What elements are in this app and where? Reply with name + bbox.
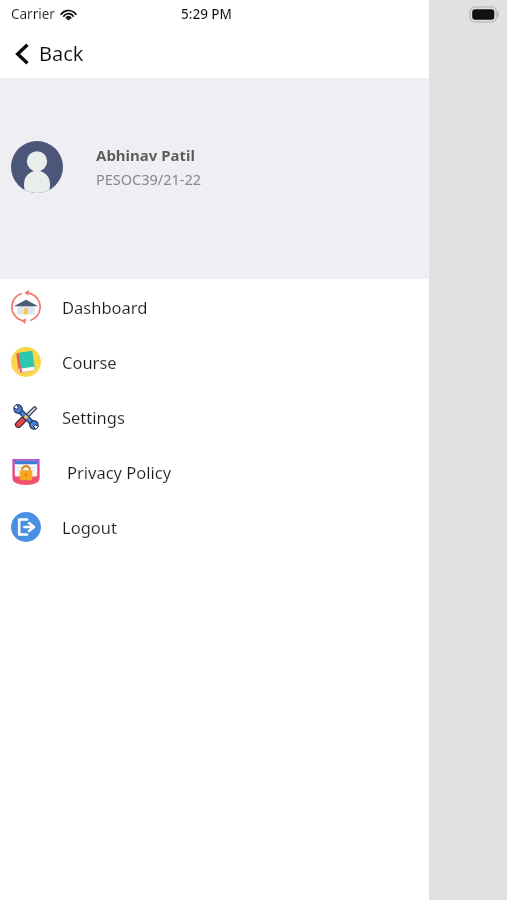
staticText: Abhinav Patil [96,145,196,165]
button[interactable]: Privacy Policy [0,444,429,499]
button[interactable]: Profile photo [11,141,202,193]
staticText: Course [62,351,117,373]
staticText: Settings [62,406,125,428]
staticText: 5:29 PM [181,5,232,23]
staticText: Carrier [11,5,55,23]
other: Battery [470,7,499,22]
staticText: Dashboard [62,296,148,318]
button[interactable]: Dashboard [0,279,429,334]
staticText: Logout [62,516,117,538]
button[interactable]: Back [10,34,90,73]
button[interactable]: Course [0,334,429,389]
staticText: Back [39,40,84,67]
other: Profile photo [11,141,63,193]
staticText: PESOC39/21-22 [96,169,202,189]
staticText: Privacy Policy [67,461,172,483]
button[interactable]: Logout [0,499,429,554]
button[interactable]: Settings [0,389,429,444]
